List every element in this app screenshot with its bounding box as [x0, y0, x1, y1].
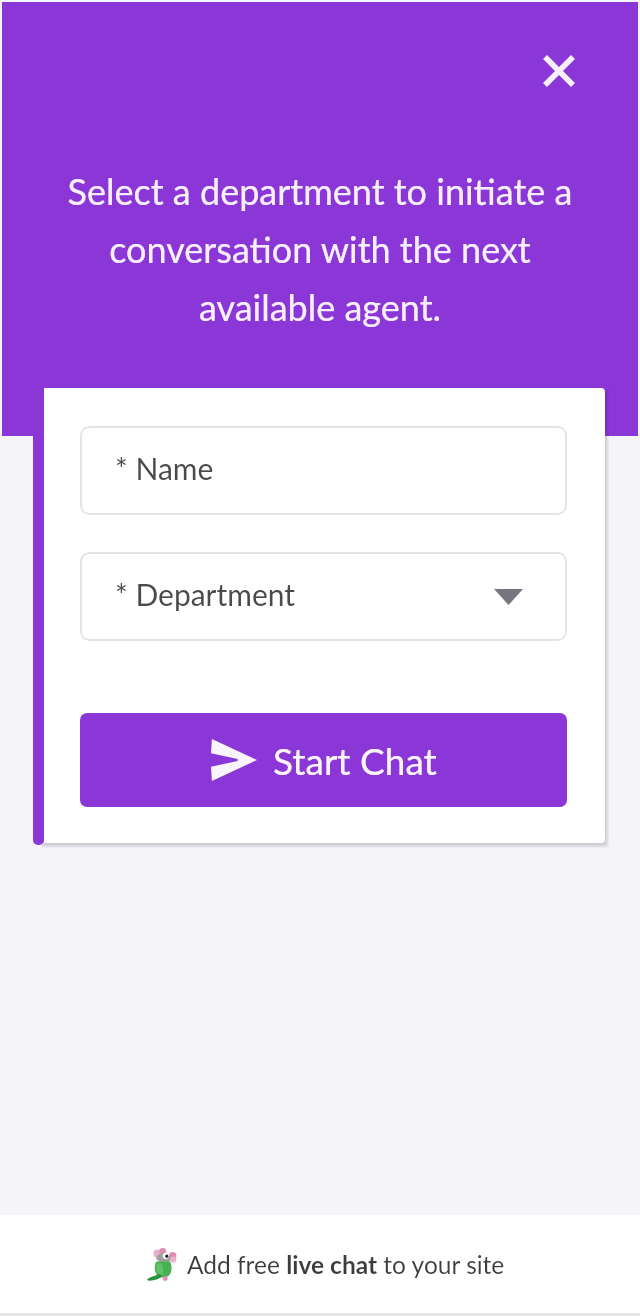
button[interactable]: Close chat — [525, 37, 593, 105]
button[interactable]: Start Chat — [80, 713, 567, 807]
staticText: Start Chat — [273, 738, 437, 782]
other: Live chat logo — [146, 1248, 177, 1282]
staticText: Select a department to initiate a conver… — [60, 169, 580, 328]
button[interactable]: Live chat logo — [0, 1215, 640, 1313]
button[interactable]: * Name — [80, 426, 567, 515]
staticText: * Department — [115, 576, 296, 612]
button[interactable]: Select department — [80, 552, 567, 641]
staticText: Add free live chat to your site — [187, 1250, 505, 1279]
staticText: * Name — [115, 450, 214, 486]
